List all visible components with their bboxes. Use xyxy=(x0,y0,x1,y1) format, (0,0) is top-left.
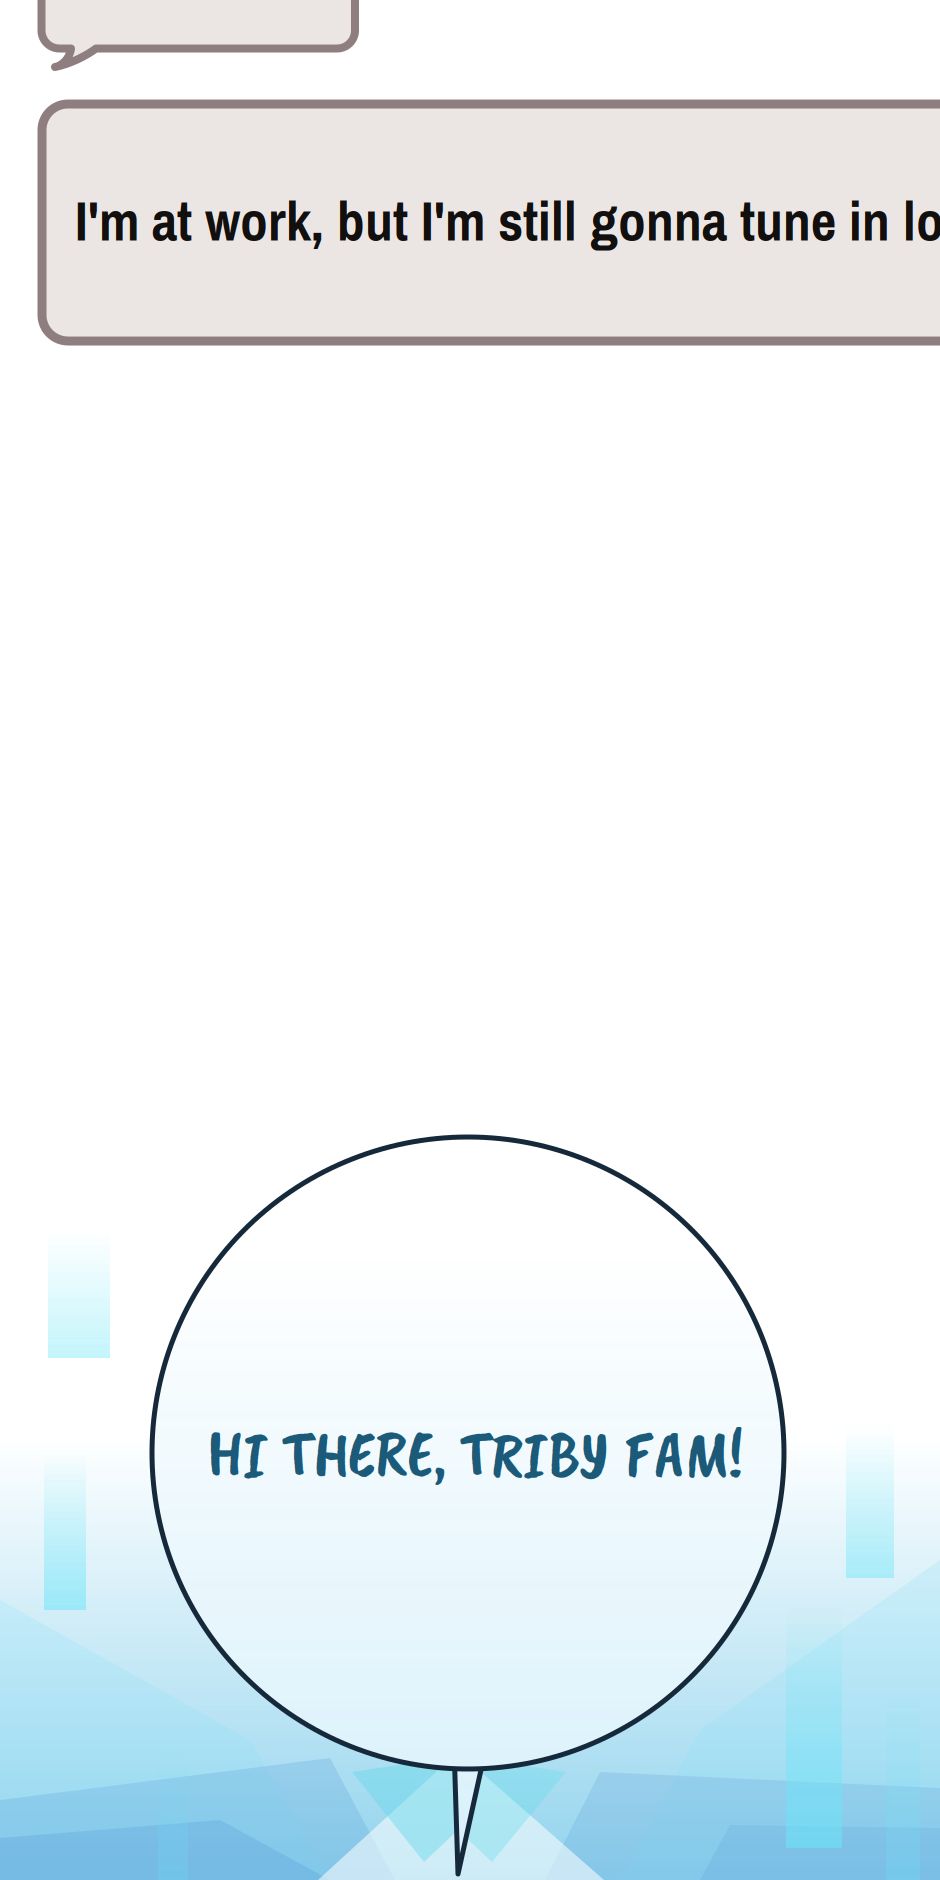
staticText: I'm at work, but I'm still gonna tune in… xyxy=(75,183,940,258)
staticText: HI THERE, TRIBY FAM! xyxy=(207,1413,743,1495)
